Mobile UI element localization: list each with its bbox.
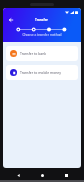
button[interactable]: Back xyxy=(6,15,16,25)
staticText: Transfer to mobile money xyxy=(20,70,61,75)
button[interactable]: Back xyxy=(12,169,24,181)
staticText: Transfer xyxy=(35,18,48,22)
staticText: Transfer to bank xyxy=(20,51,47,56)
button[interactable]: Transfer to bank xyxy=(6,46,78,61)
staticText: Choose a transfer method xyxy=(22,33,62,37)
button[interactable]: Transfer to mobile money xyxy=(6,65,78,80)
button[interactable]: Home xyxy=(36,169,48,181)
button[interactable]: Recent apps xyxy=(60,169,72,181)
